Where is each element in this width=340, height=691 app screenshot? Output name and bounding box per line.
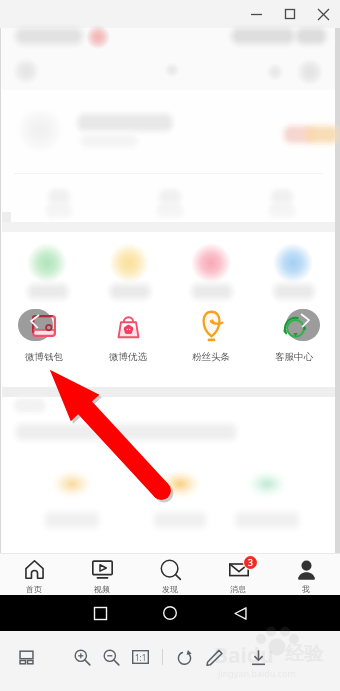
button[interactable]: Recent apps [65,595,135,631]
button[interactable]: Close [306,1,340,27]
staticText: 微博优选 [109,351,147,363]
button[interactable]: Back [205,595,275,631]
button[interactable]: Zoom in [69,644,95,670]
staticText: 发现 [162,584,178,594]
button[interactable]: Minimize [240,1,273,27]
staticText: 视频 [94,584,110,594]
staticText: 客服中心 [275,351,313,363]
button[interactable]: Maximize [273,1,306,27]
button[interactable]: Edit [201,644,227,670]
button[interactable]: 发现 [136,553,204,595]
button[interactable]: 视频 [68,553,136,595]
staticText: 微博钱包 [25,351,63,363]
staticText: Baidu [214,641,274,670]
staticText: 经验 [285,642,323,666]
button[interactable]: Save [245,644,271,670]
button[interactable]: Zoom out [98,644,124,670]
button[interactable]: 微博钱包 [2,310,86,363]
button[interactable]: 我 [272,553,340,595]
staticText: 消息 [230,584,246,594]
button[interactable]: Rotate [171,644,197,670]
staticText: 我 [302,584,310,594]
button[interactable]: Home [135,595,205,631]
button[interactable]: Fit to screen [13,644,39,670]
button[interactable]: 首页 [0,553,68,595]
staticText: jingyan.baidu.com [218,667,296,679]
button[interactable]: Actual size [127,644,153,670]
button[interactable]: 微博优选 [86,310,169,363]
button[interactable]: 客服中心 [252,310,335,363]
staticText: 首页 [26,584,42,594]
staticText: 3 [248,557,253,569]
button[interactable]: 3 [204,553,272,595]
button[interactable]: 粉丝头条 [169,310,252,363]
staticText: 1:1 [135,652,147,663]
staticText: 粉丝头条 [192,351,230,363]
